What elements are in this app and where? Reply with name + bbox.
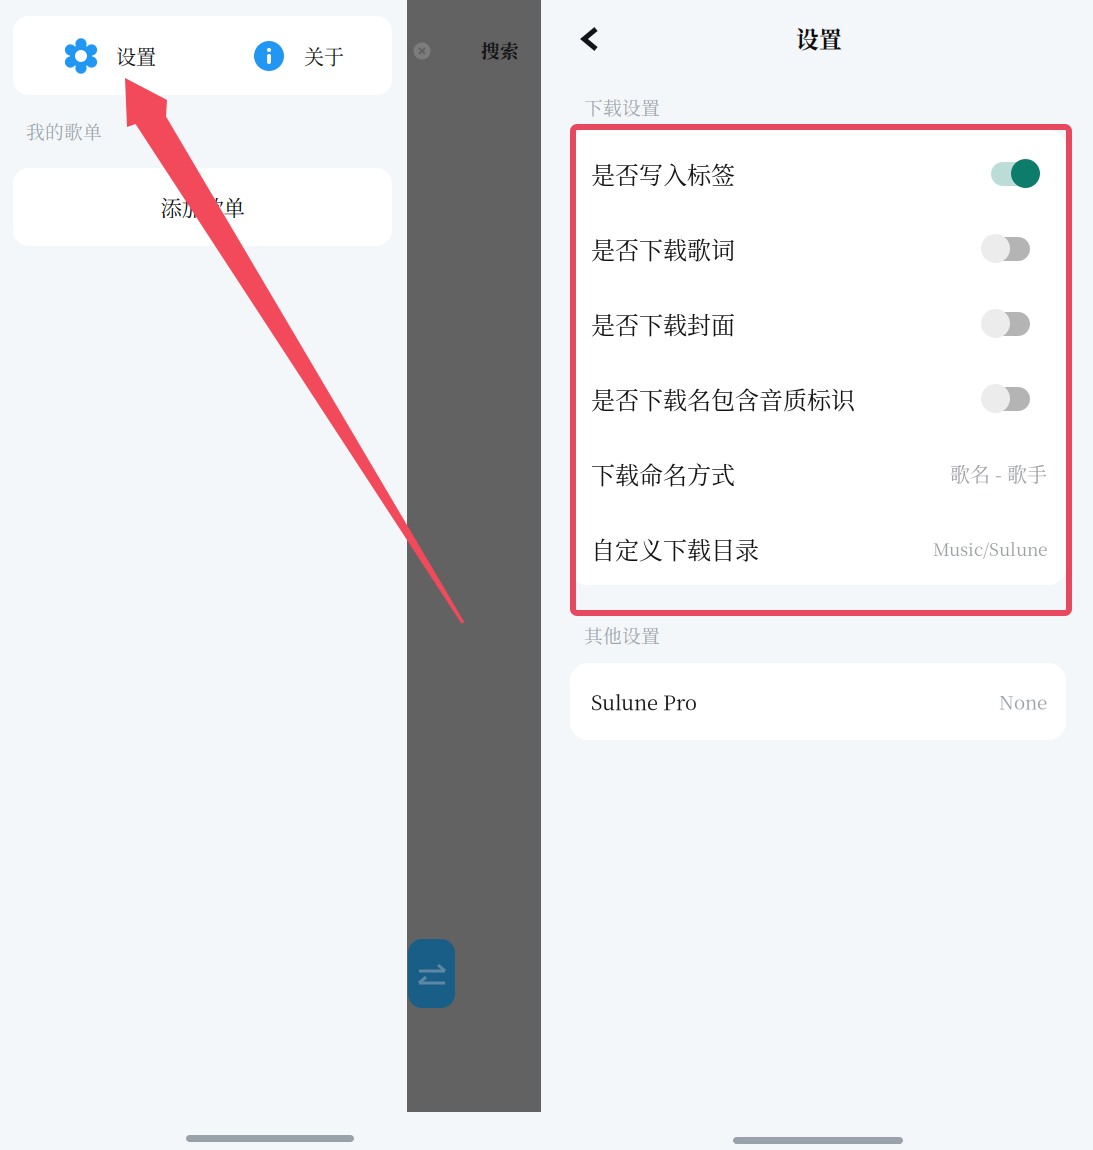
staticText: 自定义下载目录 bbox=[591, 531, 759, 566]
staticText: 添加歌单 bbox=[160, 192, 244, 222]
staticText: None bbox=[999, 688, 1047, 715]
staticText: 是否下载歌词 bbox=[591, 231, 735, 266]
staticText: 是否下载封面 bbox=[591, 306, 735, 341]
button[interactable]: 下载命名方式 bbox=[570, 436, 1066, 511]
staticText: Music/Sulune bbox=[933, 536, 1047, 561]
staticText: 是否下载名包含音质标识 bbox=[591, 381, 855, 416]
staticText: 下载设置 bbox=[584, 94, 660, 120]
button[interactable]: 是否下载歌词 bbox=[570, 211, 1066, 286]
button[interactable]: Back bbox=[572, 19, 610, 59]
button[interactable]: 添加歌单 bbox=[13, 168, 392, 246]
staticText: 设置 bbox=[796, 22, 842, 54]
staticText: 其他设置 bbox=[584, 622, 660, 648]
staticText: Sulune Pro bbox=[591, 687, 697, 716]
staticText: 搜索 bbox=[481, 37, 519, 63]
staticText: 是否写入标签 bbox=[591, 156, 735, 191]
button[interactable]: 是否下载封面 bbox=[570, 286, 1066, 361]
button[interactable]: 设置 bbox=[63, 38, 203, 74]
staticText: 下载命名方式 bbox=[591, 456, 735, 491]
staticText: 设置 bbox=[116, 42, 156, 70]
staticText: 歌名 - 歌手 bbox=[950, 459, 1047, 488]
button[interactable]: Sulune Pro bbox=[570, 663, 1066, 740]
button[interactable]: 是否写入标签 bbox=[570, 136, 1066, 211]
button[interactable]: 关于 bbox=[254, 38, 394, 74]
staticText: 我的歌单 bbox=[26, 118, 102, 144]
button[interactable]: 自定义下载目录 bbox=[570, 511, 1066, 586]
button[interactable]: 是否下载名包含音质标识 bbox=[570, 361, 1066, 436]
staticText: 关于 bbox=[304, 42, 344, 70]
